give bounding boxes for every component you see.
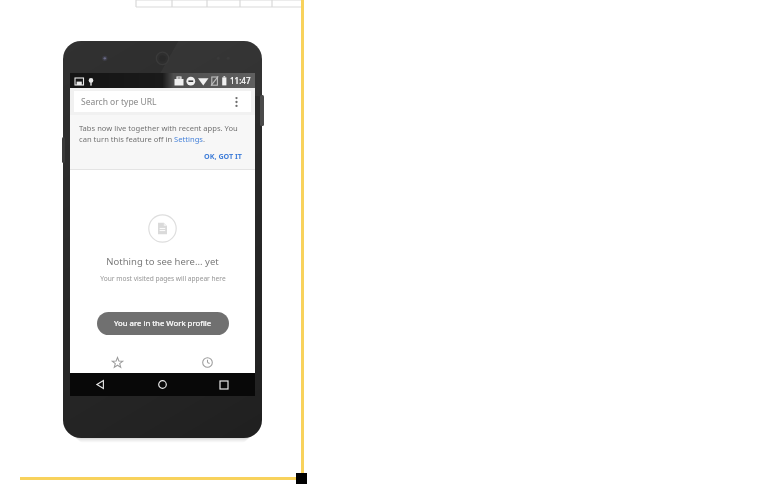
button[interactable]: OK, GOT IT xyxy=(201,150,246,162)
staticText: Nothing to see here... yet xyxy=(106,255,219,268)
staticText: Search or type URL xyxy=(81,96,228,108)
button[interactable]: You are in the Work profile xyxy=(97,312,229,335)
button[interactable]: Search or type URL xyxy=(74,91,251,112)
button[interactable]: Recent apps xyxy=(193,373,255,396)
staticText: Tabs now live together with recent apps.… xyxy=(79,123,246,144)
staticText: 11:47 xyxy=(230,75,251,86)
button[interactable]: History xyxy=(174,351,241,373)
button[interactable]: Home xyxy=(131,373,193,396)
button[interactable]: Back xyxy=(70,373,131,396)
staticText: OK, GOT IT xyxy=(204,151,243,161)
button[interactable]: More options xyxy=(228,94,244,110)
button[interactable]: Bookmarks xyxy=(84,351,151,373)
staticText: Your most visited pages will appear here xyxy=(100,274,226,283)
staticText: You are in the Work profile xyxy=(114,318,212,329)
